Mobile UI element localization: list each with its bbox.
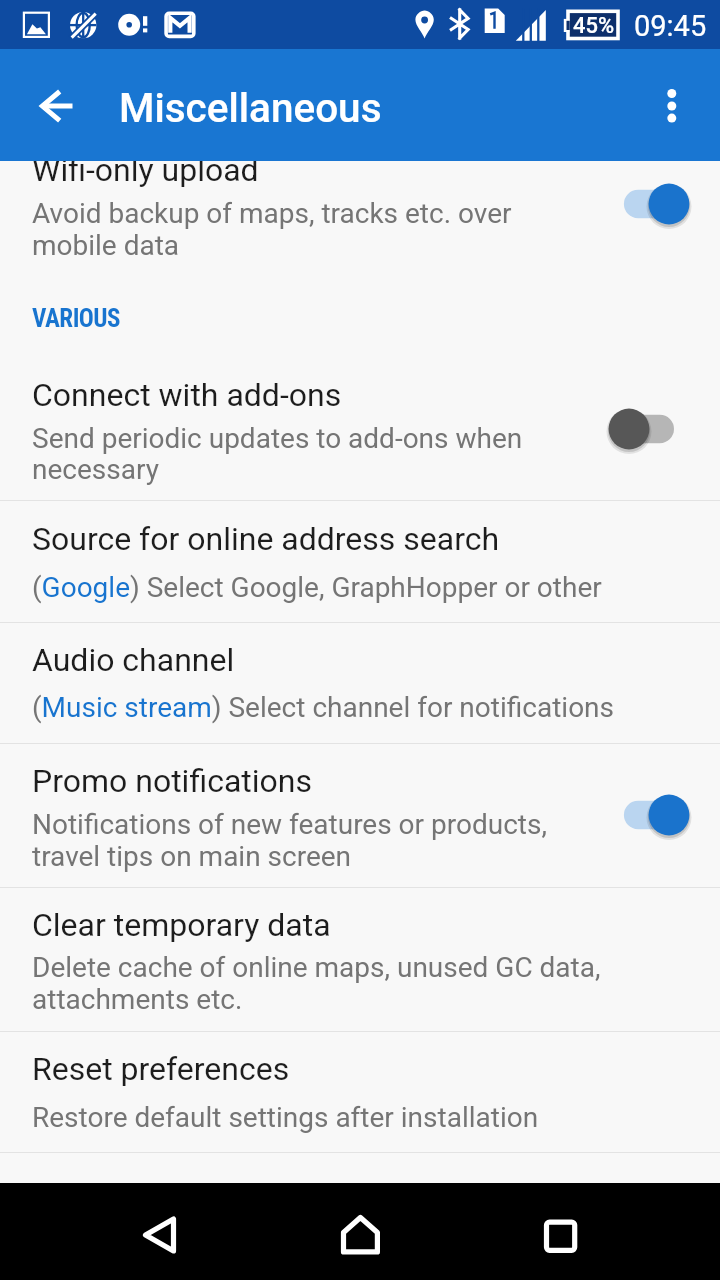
button[interactable]: Reset preferences [0, 1031, 720, 1152]
staticText: Audio channel [32, 641, 235, 679]
staticText: Notifications of new features or product… [32, 808, 547, 841]
staticText: 09:45 [634, 9, 707, 43]
button[interactable]: Promo notifications [0, 743, 720, 887]
button[interactable]: Back [112, 1183, 208, 1280]
staticText: Reset preferences [32, 1050, 290, 1088]
staticText: Connect with add-ons [32, 376, 342, 414]
staticText: Promo notifications [32, 762, 312, 800]
staticText: Send periodic updates to add-ons when [32, 422, 523, 455]
staticText: Restore default settings after installat… [32, 1101, 539, 1134]
button[interactable]: Toggle [609, 777, 720, 853]
staticText: mobile data [32, 229, 180, 262]
staticText: Clear temporary data [32, 906, 331, 944]
button[interactable]: Clear temporary data [0, 887, 720, 1031]
staticText: (Music stream) Select channel for notifi… [32, 691, 615, 724]
button[interactable]: Audio channel [0, 622, 720, 743]
button[interactable]: More options [628, 57, 716, 145]
staticText: (Google) Select Google, GraphHopper or o… [32, 571, 602, 604]
staticText: Source for online address search [32, 520, 500, 558]
staticText: travel tips on main screen [32, 840, 352, 873]
button[interactable]: Wifi-only upload [0, 161, 720, 276]
staticText: Avoid backup of maps, tracks etc. over [32, 197, 512, 230]
button[interactable]: Source for online address search [0, 500, 720, 622]
button[interactable]: Toggle [569, 391, 689, 467]
button[interactable]: Navigate up [12, 57, 100, 145]
staticText: 45% [573, 13, 615, 39]
button[interactable]: Connect with add-ons [0, 356, 720, 500]
staticText: Wifi-only upload [32, 161, 259, 189]
button[interactable]: Home [312, 1183, 408, 1280]
staticText: Delete cache of online maps, unused GC d… [32, 951, 601, 984]
staticText: necessary [32, 453, 159, 486]
button[interactable]: Recent apps [512, 1183, 608, 1280]
staticText: attachments etc. [32, 983, 243, 1016]
button[interactable]: Toggle [609, 166, 720, 242]
staticText: VARIOUS [32, 304, 121, 333]
staticText: Miscellaneous [119, 84, 382, 131]
